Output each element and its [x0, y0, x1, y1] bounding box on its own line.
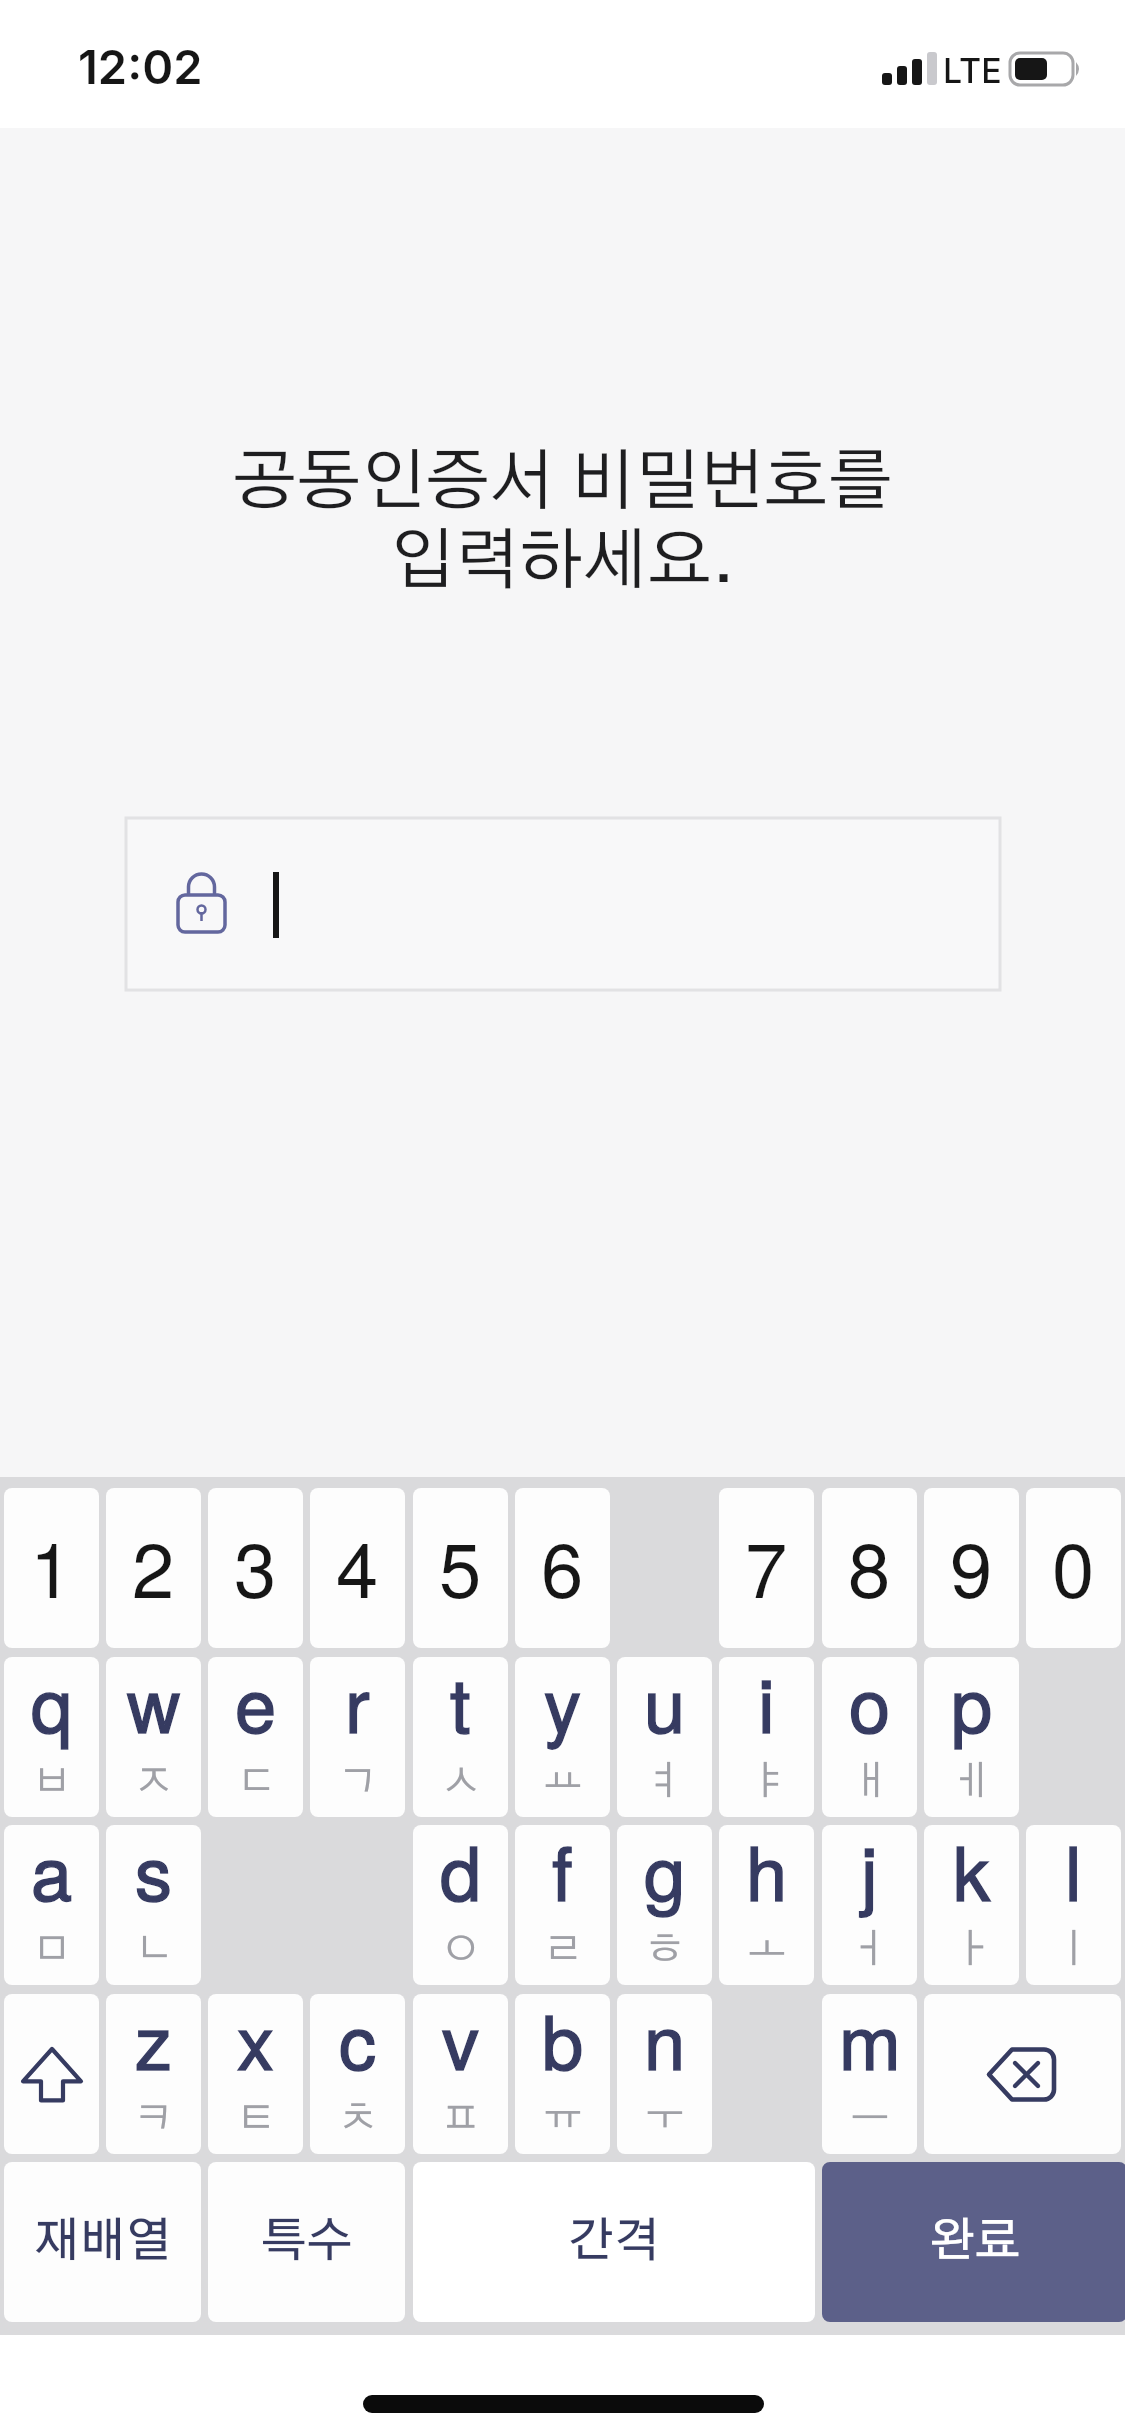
staticText: p	[951, 1657, 993, 1754]
staticText: 4	[336, 1511, 379, 1620]
button[interactable]: b	[515, 1994, 610, 2154]
button[interactable]: u	[617, 1657, 712, 1817]
button[interactable]: m	[822, 1994, 917, 2154]
button[interactable]: g	[617, 1825, 712, 1985]
staticText: ㅂ	[32, 1762, 72, 1802]
staticText: u	[644, 1657, 686, 1754]
button[interactable]: 3	[208, 1488, 303, 1648]
staticText: j	[861, 1825, 878, 1922]
staticText: 특수	[261, 2219, 353, 2266]
button[interactable]	[126, 818, 1000, 990]
button[interactable]: 간격	[413, 2162, 815, 2322]
button[interactable]: 2	[106, 1488, 201, 1648]
button[interactable]: s	[106, 1825, 201, 1985]
button[interactable]: 9	[924, 1488, 1019, 1648]
staticText: 2	[132, 1511, 175, 1620]
button[interactable]: r	[310, 1657, 405, 1817]
staticText: 0	[1052, 1511, 1095, 1620]
button[interactable]: 1	[4, 1488, 99, 1648]
button[interactable]: 특수	[208, 2162, 405, 2322]
button[interactable]: k	[924, 1825, 1019, 1985]
button[interactable]: 재배열	[4, 2162, 201, 2322]
staticText: z	[135, 1994, 172, 2091]
staticText: w	[127, 1657, 181, 1754]
staticText: ㅡ	[850, 2099, 890, 2139]
staticText: h	[746, 1825, 788, 1922]
staticText: q	[31, 1657, 73, 1754]
staticText: v	[442, 1994, 479, 2091]
staticText: 7	[745, 1511, 788, 1620]
staticText: ㅕ	[645, 1762, 685, 1802]
button[interactable]: w	[106, 1657, 201, 1817]
staticText: v	[442, 1994, 479, 2091]
staticText: k	[953, 1825, 990, 1922]
staticText: g	[644, 1825, 686, 1922]
staticText: ㅇ	[441, 1930, 481, 1970]
staticText: r	[345, 1657, 370, 1754]
button[interactable]: 4	[310, 1488, 405, 1648]
staticText: a	[31, 1825, 73, 1922]
staticText: 6	[541, 1511, 584, 1620]
button[interactable]: j	[822, 1825, 917, 1985]
staticText: ㅔ	[952, 1762, 992, 1802]
button[interactable]: p	[924, 1657, 1019, 1817]
button[interactable]: 7	[719, 1488, 814, 1648]
button[interactable]: 5	[413, 1488, 508, 1648]
staticText: b	[542, 1994, 584, 2091]
staticText: d	[440, 1825, 482, 1922]
staticText: m	[839, 1994, 901, 2091]
button[interactable]: 완료	[822, 2162, 1125, 2322]
staticText: x	[237, 1994, 274, 2091]
button[interactable]: o	[822, 1657, 917, 1817]
staticText: n	[644, 1994, 686, 2091]
button[interactable]: 6	[515, 1488, 610, 1648]
staticText: ㅋ	[134, 2099, 174, 2139]
button[interactable]: h	[719, 1825, 814, 1985]
button[interactable]: q	[4, 1657, 99, 1817]
staticText: m	[839, 1994, 901, 2091]
staticText: l	[1065, 1825, 1082, 1922]
staticText: ㅈ	[134, 1762, 174, 1802]
staticText: 3	[234, 1511, 277, 1620]
staticText: c	[339, 1994, 376, 2091]
button[interactable]: v	[413, 1994, 508, 2154]
button[interactable]: 8	[822, 1488, 917, 1648]
staticText: e	[235, 1657, 277, 1754]
staticText: 재배열	[34, 2219, 172, 2266]
staticText: t	[450, 1657, 471, 1754]
staticText: r	[345, 1657, 370, 1754]
button[interactable]: d	[413, 1825, 508, 1985]
button[interactable]: a	[4, 1825, 99, 1985]
staticText: ㅎ	[645, 1930, 685, 1970]
button[interactable]: i	[719, 1657, 814, 1817]
staticText: z	[135, 1994, 172, 2091]
staticText: d	[440, 1825, 482, 1922]
button[interactable]: y	[515, 1657, 610, 1817]
staticText: w	[127, 1657, 181, 1754]
staticText: s	[135, 1825, 172, 1922]
staticText: e	[235, 1657, 277, 1754]
staticText: y	[544, 1657, 581, 1754]
button[interactable]: x	[208, 1994, 303, 2154]
staticText: LTE	[943, 50, 1002, 91]
staticText: ㅠ	[543, 2099, 583, 2139]
staticText: f	[552, 1825, 573, 1922]
staticText: o	[849, 1657, 891, 1754]
staticText: x	[237, 1994, 274, 2091]
staticText: ㅐ	[850, 1762, 890, 1802]
staticText: ㅣ	[1054, 1930, 1094, 1970]
button[interactable]	[924, 1994, 1121, 2154]
staticText: k	[953, 1825, 990, 1922]
button[interactable]: c	[310, 1994, 405, 2154]
button[interactable]	[4, 1994, 99, 2154]
button[interactable]: f	[515, 1825, 610, 1985]
staticText: l	[1065, 1825, 1082, 1922]
button[interactable]: z	[106, 1994, 201, 2154]
button[interactable]: n	[617, 1994, 712, 2154]
button[interactable]: 0	[1026, 1488, 1121, 1648]
button[interactable]: l	[1026, 1825, 1121, 1985]
button[interactable]: e	[208, 1657, 303, 1817]
staticText: ㅊ	[338, 2099, 378, 2139]
button[interactable]: t	[413, 1657, 508, 1817]
staticText: f	[552, 1825, 573, 1922]
